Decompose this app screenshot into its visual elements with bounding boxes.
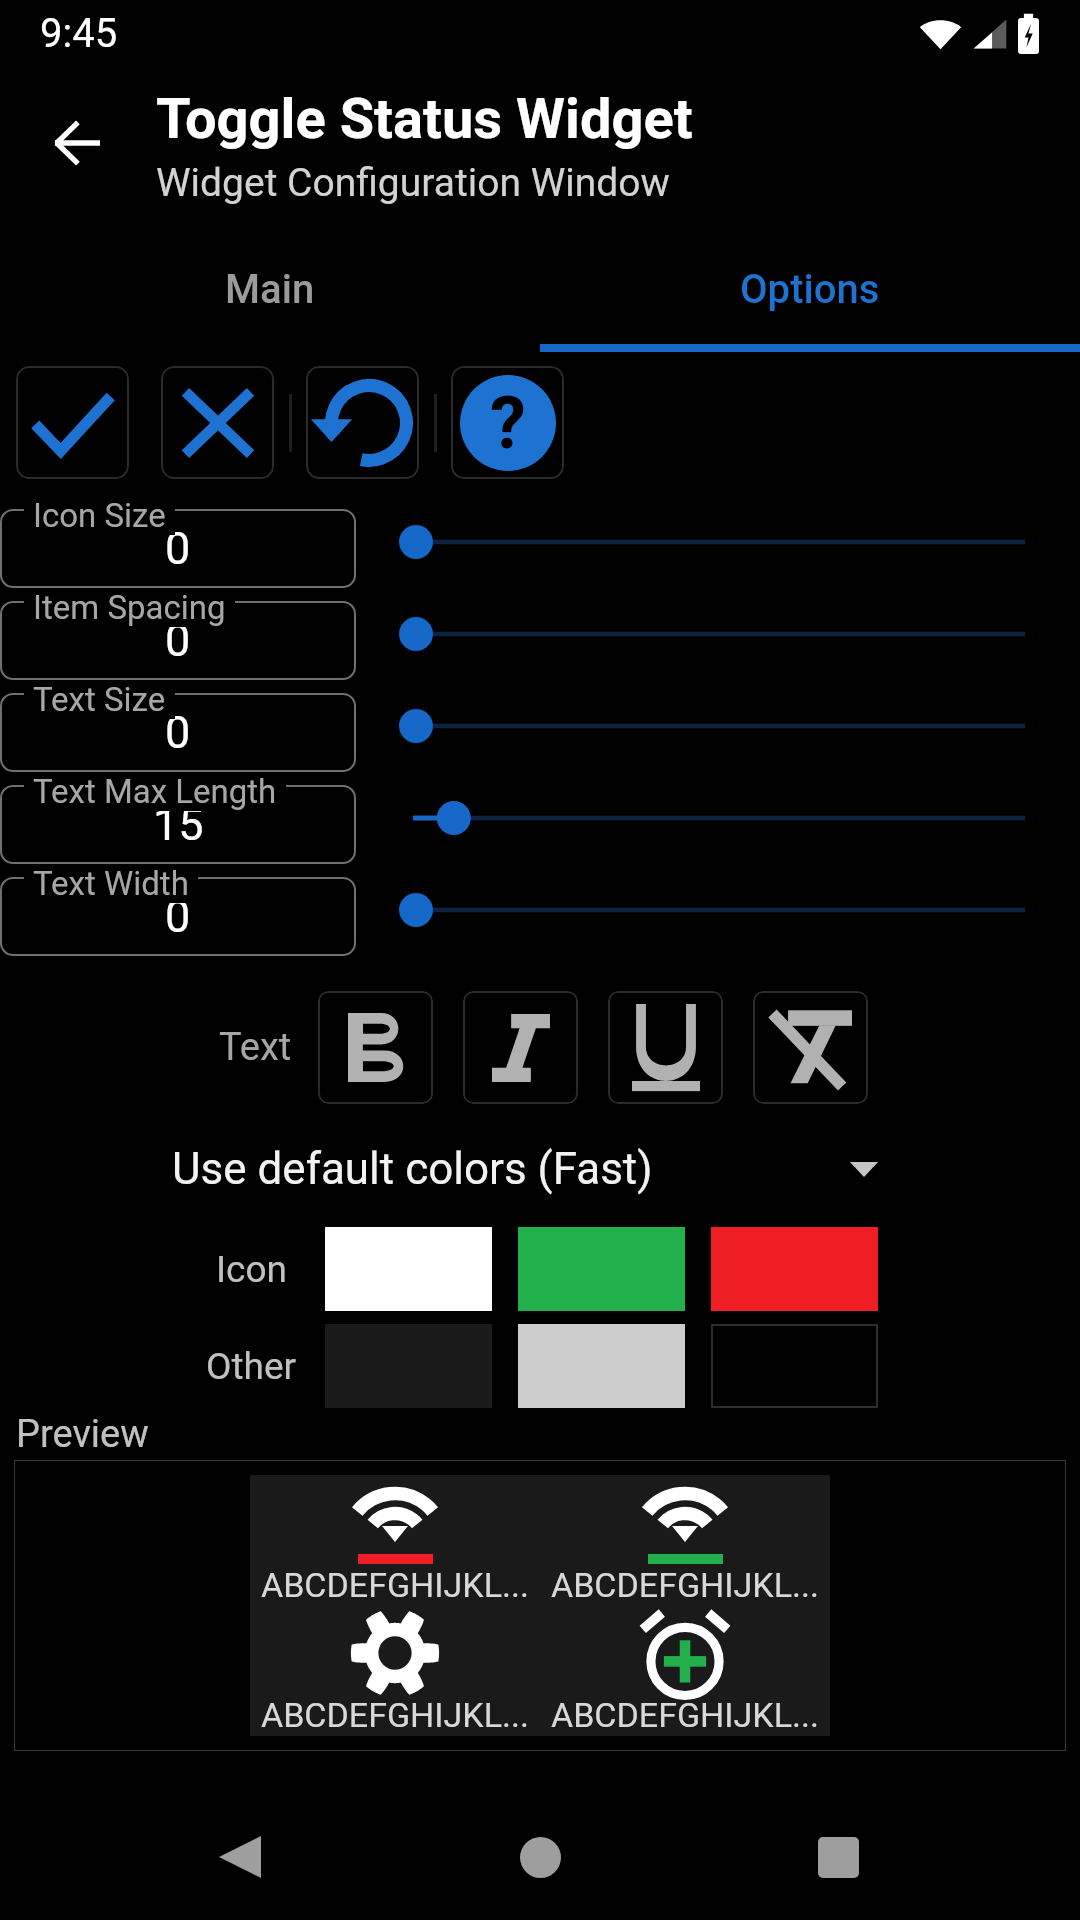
staticText: 0 [165, 706, 191, 759]
button[interactable]: Bold [318, 991, 433, 1104]
button[interactable]: 15 [0, 785, 356, 864]
staticText: Toggle Status Widget [156, 86, 693, 152]
staticText: Options [740, 266, 880, 313]
button[interactable]: ABCDEFGHIJKL... [540, 1606, 830, 1736]
staticText: Text [219, 1025, 292, 1070]
staticText: 9:45 [40, 10, 118, 57]
button[interactable]: Options [540, 234, 1080, 344]
button[interactable]: Recent apps [790, 1809, 886, 1905]
staticText: Icon Size [33, 496, 166, 535]
button[interactable] [374, 512, 1025, 572]
button[interactable]: Use default colors (Fast) [0, 1140, 1080, 1198]
button[interactable] [374, 788, 1025, 848]
staticText: ABCDEFGHIJKL... [551, 1695, 819, 1735]
button[interactable]: Home [492, 1809, 588, 1905]
staticText: 0 [165, 522, 191, 575]
button[interactable]: Confirm [16, 366, 129, 479]
button[interactable]: Navigate up [10, 76, 144, 210]
button[interactable]: Italic [463, 991, 578, 1104]
button[interactable]: 0 [0, 877, 356, 956]
staticText: Main [225, 266, 315, 313]
staticText: ? [490, 381, 526, 465]
button[interactable]: ABCDEFGHIJKL... [250, 1606, 540, 1736]
button[interactable]: Cancel [161, 366, 274, 479]
button[interactable]: ABCDEFGHIJKL... [540, 1475, 830, 1606]
button[interactable]: Main [0, 234, 540, 344]
staticText: 0 [165, 890, 191, 943]
staticText: ABCDEFGHIJKL... [551, 1565, 819, 1605]
staticText: ABCDEFGHIJKL... [261, 1695, 529, 1735]
button[interactable]: Help [451, 366, 564, 479]
button[interactable]: 0 [0, 601, 356, 680]
staticText: 0 [165, 614, 191, 667]
button[interactable] [374, 604, 1025, 664]
staticText: Item Spacing [33, 588, 226, 627]
staticText: Use default colors (Fast) [172, 1143, 653, 1195]
staticText: Other [206, 1345, 297, 1388]
staticText: Text Size [33, 680, 166, 719]
staticText: Icon [216, 1248, 287, 1291]
staticText: Text Width [33, 864, 189, 903]
staticText: ABCDEFGHIJKL... [261, 1565, 529, 1605]
button[interactable]: Underline [608, 991, 723, 1104]
button[interactable]: Back [192, 1809, 288, 1905]
button[interactable]: Reset [306, 366, 419, 479]
button[interactable]: ABCDEFGHIJKL... [250, 1475, 540, 1606]
staticText: Widget Configuration Window [156, 160, 670, 206]
button[interactable]: Other colour 3 [711, 1324, 878, 1408]
staticText: Preview [16, 1412, 149, 1457]
button[interactable] [374, 696, 1025, 756]
button[interactable]: 0 [0, 693, 356, 772]
staticText: 15 [153, 798, 204, 851]
button[interactable]: Clear formatting [753, 991, 868, 1104]
button[interactable]: 0 [0, 509, 356, 588]
button[interactable] [374, 880, 1025, 940]
staticText: Text Max Length [33, 772, 277, 811]
